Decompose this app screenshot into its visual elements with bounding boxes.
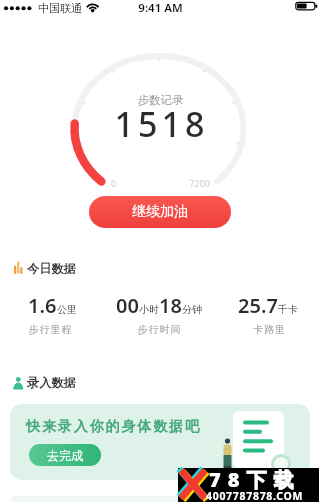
staticText: 公里 [57,303,77,316]
staticText: 25.7 [238,292,278,319]
staticText: 步行时间 [0,323,319,336]
staticText: 卡路里 [110,323,319,336]
staticText: 小时 [139,303,159,316]
staticText: 1.6 [28,292,57,319]
button[interactable]: 继续加油 [89,196,231,228]
staticText: 步行里程 [28,323,72,336]
staticText: 今日数据 [27,261,76,276]
staticText: 1518 [2,101,319,147]
staticText: 4007787878.COM [206,489,304,502]
staticText: 9:41 AM [1,0,319,16]
staticText: 去完成 [47,448,83,463]
staticText: 78下载 [209,466,301,493]
staticText: 千卡 [278,303,298,316]
staticText: 00 [116,292,139,319]
staticText: 分钟 [182,303,202,316]
staticText: 0 [0,177,273,189]
staticText: 18 [159,292,182,319]
staticText: 快来录入你的身体数据吧 [26,418,201,436]
staticText: 步数记录 [1,93,319,107]
button[interactable]: 快来录入你的身体数据吧 [10,404,310,480]
staticText: 中国联通 [38,1,82,15]
staticText: 继续加油 [132,203,188,221]
button[interactable]: 去完成 [29,444,101,466]
staticText: 录入数据 [27,375,76,390]
staticText: 7200 [40,177,319,189]
